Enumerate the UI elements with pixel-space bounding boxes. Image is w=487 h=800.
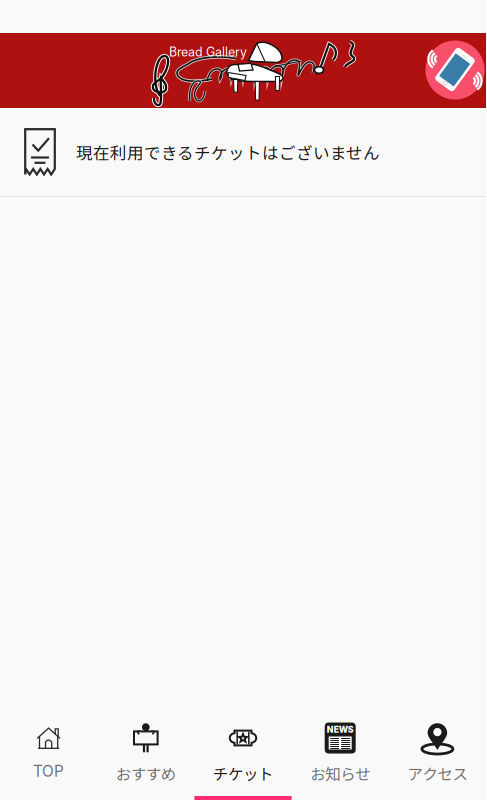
staticText: 現在利用できるチケットはございません	[76, 140, 380, 164]
button[interactable]: NEWS	[292, 710, 389, 800]
button[interactable]: TOP	[0, 710, 97, 800]
button[interactable]: おすすめ	[97, 710, 194, 800]
staticText: おすすめ	[116, 762, 176, 784]
button[interactable]: チケット	[194, 710, 292, 800]
staticText: Bread Gallery	[169, 44, 247, 59]
staticText: チケット	[213, 762, 273, 784]
button[interactable]: Shake the phone	[425, 40, 485, 100]
staticText: NEWS	[327, 724, 354, 735]
staticText: TOP	[33, 762, 64, 781]
staticText: アクセス	[407, 762, 467, 784]
button[interactable]: アクセス	[389, 710, 486, 800]
staticText: お知らせ	[310, 762, 370, 784]
